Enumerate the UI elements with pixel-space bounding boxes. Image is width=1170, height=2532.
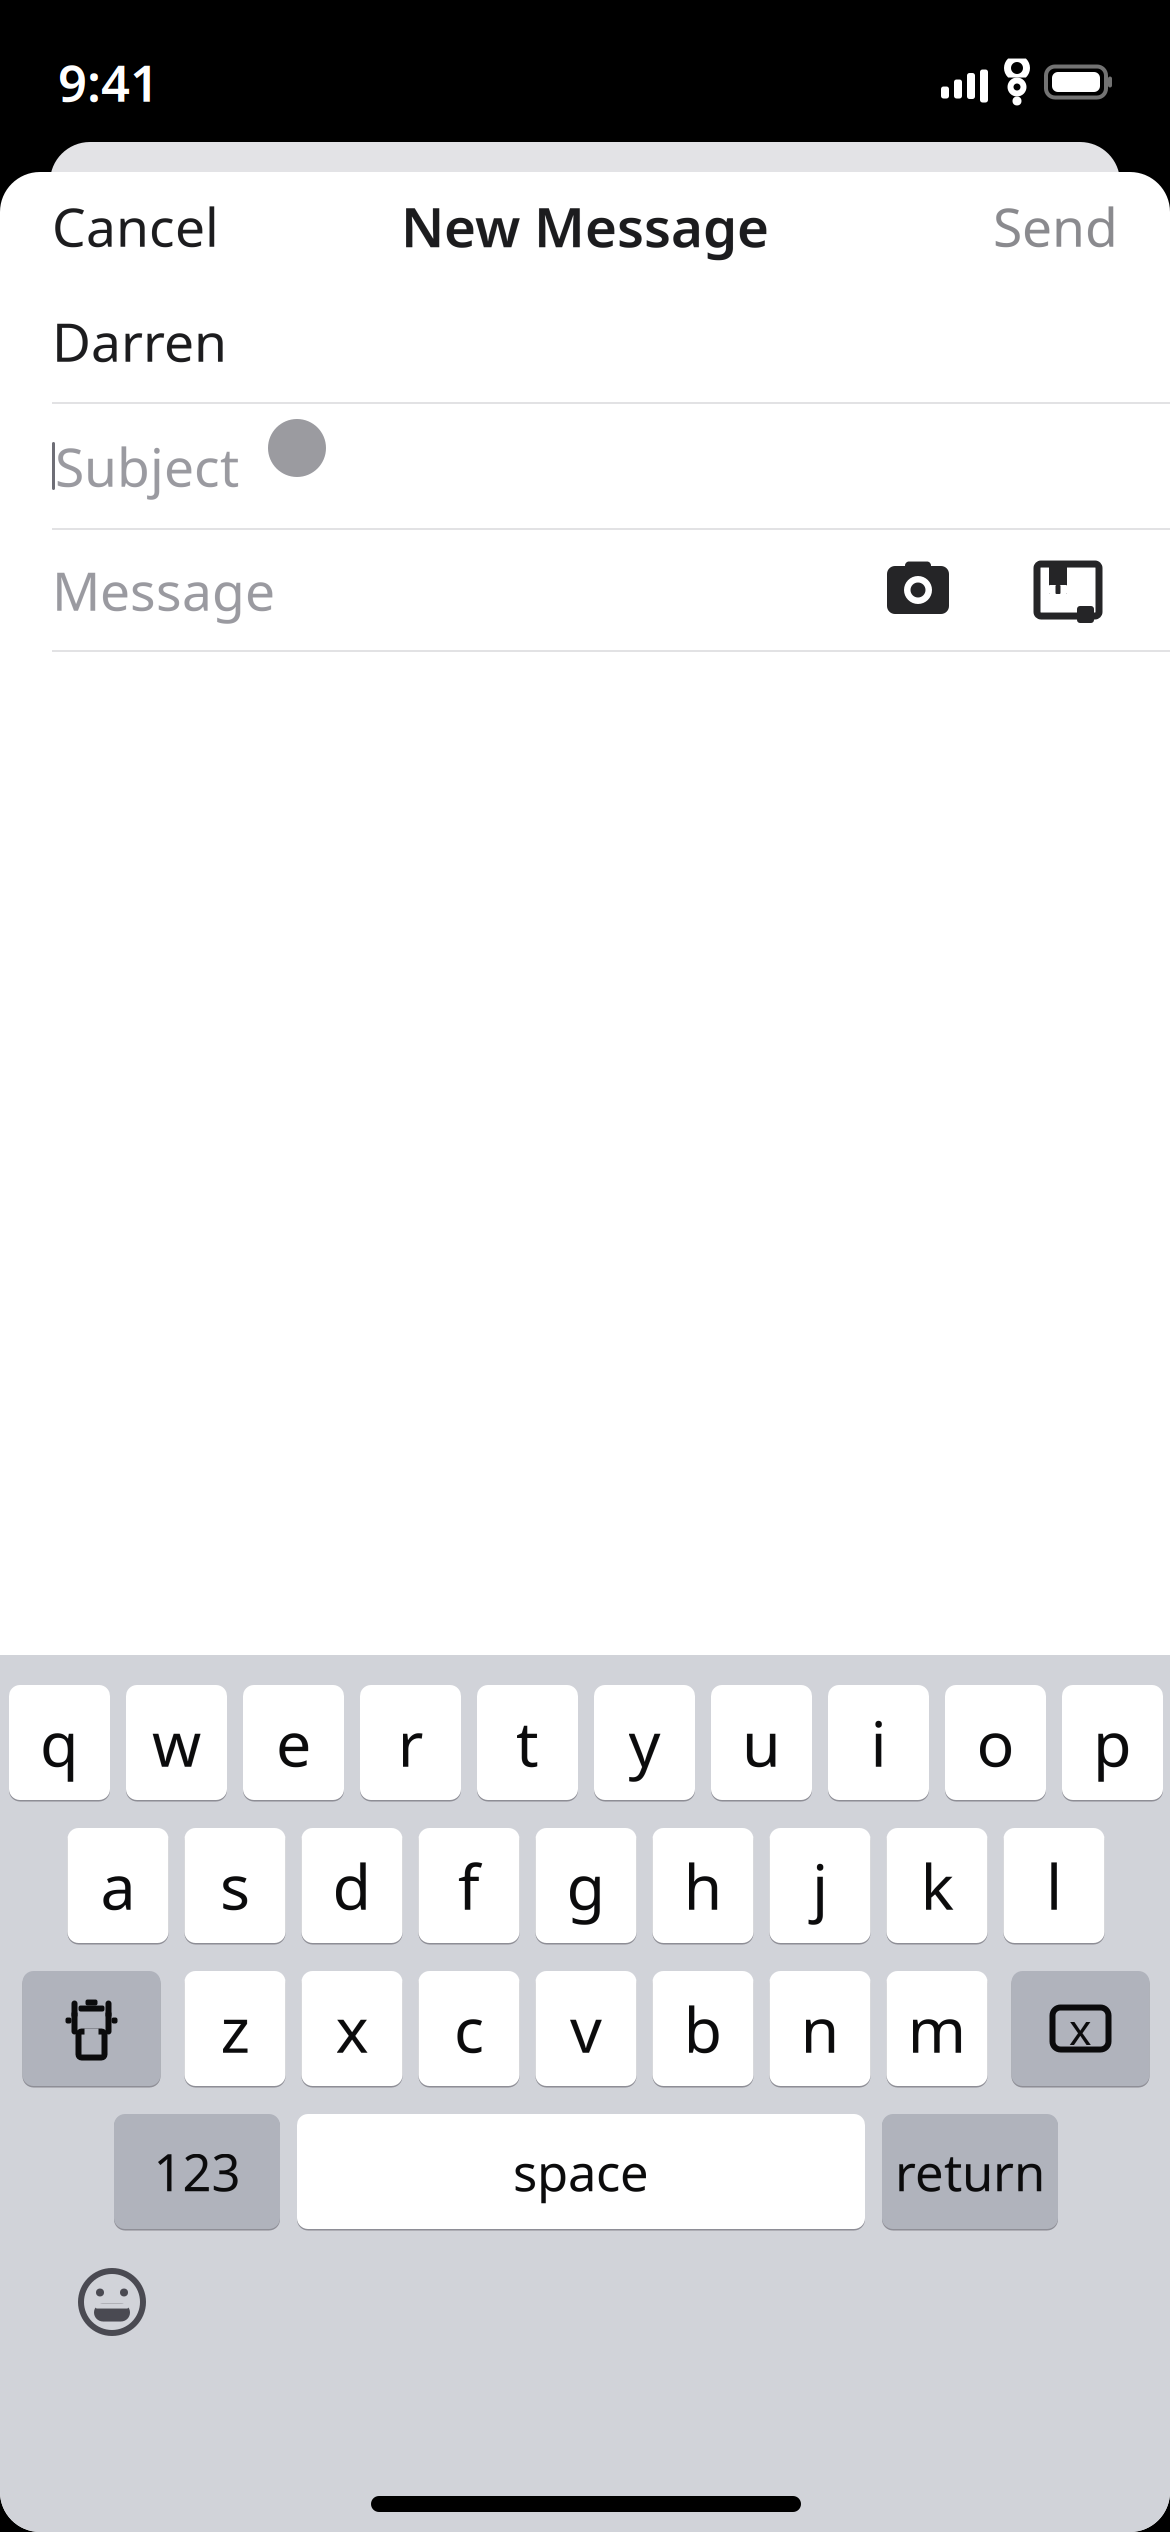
staticText: c bbox=[454, 1987, 484, 2070]
staticText: x bbox=[1069, 2000, 1092, 2057]
staticText: s bbox=[220, 1844, 250, 1927]
staticText: Message bbox=[52, 555, 275, 625]
staticText: l bbox=[1046, 1844, 1062, 1927]
staticText: m bbox=[907, 1987, 966, 2070]
staticText: New Message bbox=[401, 190, 769, 262]
staticText: 123 bbox=[153, 2138, 240, 2205]
button[interactable]: 123 bbox=[114, 2112, 280, 2231]
button[interactable]: a bbox=[67, 1826, 168, 1945]
staticText: Cancel bbox=[52, 191, 219, 261]
button[interactable]: k bbox=[886, 1826, 987, 1945]
staticText: u bbox=[742, 1701, 781, 1784]
staticText: d bbox=[332, 1844, 371, 1927]
staticText: k bbox=[920, 1844, 953, 1927]
staticText: z bbox=[220, 1987, 249, 2070]
staticText: 9:41 bbox=[58, 48, 159, 116]
button[interactable]: n bbox=[769, 1969, 870, 2088]
button[interactable]: c bbox=[418, 1969, 519, 2088]
staticText: p bbox=[1093, 1701, 1132, 1784]
staticText: x bbox=[335, 1987, 368, 2070]
button[interactable]: Subject bbox=[0, 404, 1170, 528]
button[interactable]: y bbox=[594, 1683, 695, 1802]
button[interactable]: d bbox=[301, 1826, 402, 1945]
button[interactable]: q bbox=[9, 1683, 110, 1802]
staticText: return bbox=[895, 2138, 1045, 2205]
button[interactable]: i bbox=[828, 1683, 929, 1802]
staticText: Darren bbox=[52, 306, 227, 376]
staticText: space bbox=[513, 2138, 649, 2205]
button[interactable]: Darren bbox=[0, 280, 1170, 402]
button[interactable]: w bbox=[126, 1683, 227, 1802]
staticText: b bbox=[683, 1987, 722, 2070]
staticText: e bbox=[276, 1701, 311, 1784]
button[interactable]: b bbox=[652, 1969, 753, 2088]
button[interactable]: s bbox=[184, 1826, 285, 1945]
button[interactable]: z bbox=[184, 1969, 285, 2088]
button[interactable]: r bbox=[360, 1683, 461, 1802]
staticText: i bbox=[870, 1701, 886, 1784]
staticText: v bbox=[570, 1987, 602, 2070]
button[interactable]: Send bbox=[985, 179, 1126, 273]
staticText: h bbox=[683, 1844, 722, 1927]
button[interactable]: o bbox=[945, 1683, 1046, 1802]
staticText: a bbox=[100, 1844, 135, 1927]
button[interactable]: p bbox=[1062, 1683, 1163, 1802]
staticText: Subject bbox=[55, 431, 239, 501]
button[interactable]: x bbox=[301, 1969, 402, 2088]
staticText: y bbox=[628, 1701, 660, 1784]
button[interactable]: Shift bbox=[22, 1969, 160, 2088]
button[interactable]: l bbox=[1003, 1826, 1104, 1945]
button[interactable]: v bbox=[535, 1969, 636, 2088]
button[interactable]: space bbox=[297, 2112, 865, 2231]
staticText: f bbox=[458, 1844, 480, 1927]
staticText: j bbox=[812, 1844, 828, 1927]
button[interactable]: h bbox=[652, 1826, 753, 1945]
button[interactable]: f bbox=[418, 1826, 519, 1945]
button[interactable]: Take photo or video bbox=[872, 550, 964, 630]
button[interactable]: m bbox=[886, 1969, 987, 2088]
staticText: o bbox=[976, 1701, 1014, 1784]
button[interactable]: u bbox=[711, 1683, 812, 1802]
button[interactable]: Emoji bbox=[67, 2261, 157, 2343]
button[interactable]: Cancel bbox=[44, 179, 227, 273]
button[interactable]: Apps bbox=[1022, 547, 1114, 633]
button[interactable]: g bbox=[535, 1826, 636, 1945]
staticText: g bbox=[566, 1844, 605, 1927]
button[interactable]: Delete bbox=[1011, 1969, 1149, 2088]
staticText: r bbox=[397, 1701, 423, 1784]
staticText: Send bbox=[993, 191, 1118, 261]
staticText: n bbox=[800, 1987, 839, 2070]
staticText: w bbox=[152, 1701, 201, 1784]
button[interactable]: t bbox=[477, 1683, 578, 1802]
button[interactable]: e bbox=[243, 1683, 344, 1802]
button[interactable]: return bbox=[882, 2112, 1058, 2231]
button[interactable]: j bbox=[769, 1826, 870, 1945]
staticText: t bbox=[516, 1701, 539, 1784]
staticText: q bbox=[40, 1701, 79, 1784]
